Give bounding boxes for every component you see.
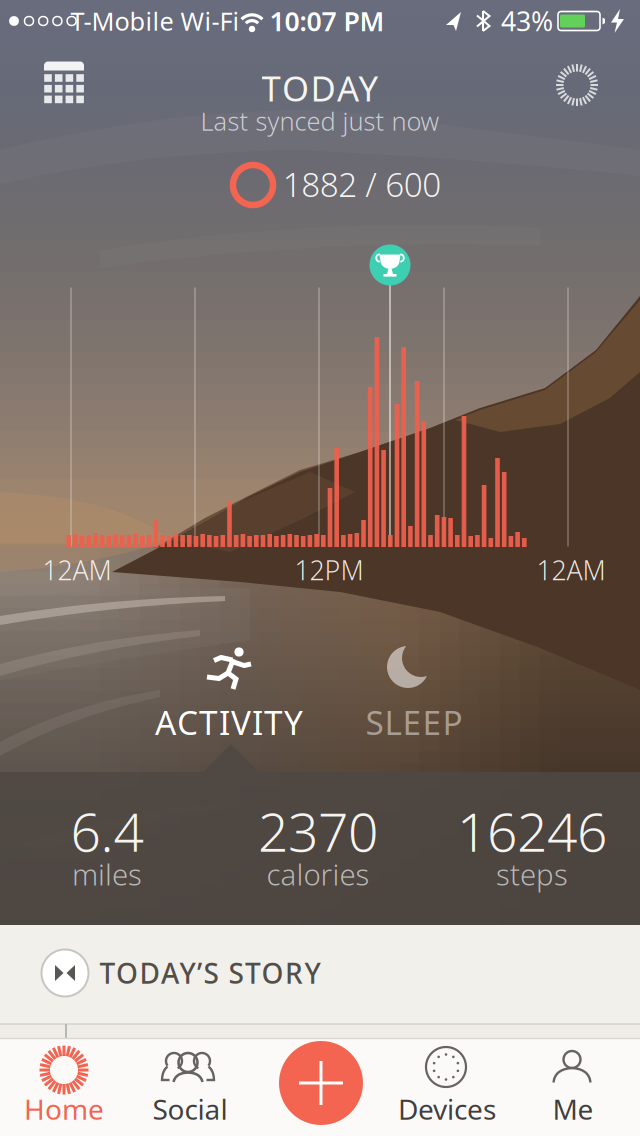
staticText: 6.4 [70,796,143,866]
staticText: 12AM [42,552,111,588]
staticText: TODAY [261,65,378,111]
staticText: SLEEP [365,700,462,744]
button[interactable]: Sync [553,61,601,109]
button[interactable]: Devices [384,1039,512,1135]
button[interactable]: Social [128,1039,256,1135]
staticText: 12PM [294,552,363,588]
staticText: Devices [398,1090,496,1128]
button[interactable]: SLEEP [336,630,486,750]
staticText: Home [24,1090,104,1128]
staticText: ACTIVITY [155,700,303,744]
staticText: 1882 / 600 [283,162,441,206]
button[interactable]: ACTIVITY [139,630,319,750]
staticText: 2370 [258,796,378,866]
button[interactable]: Me [512,1039,640,1135]
staticText: 10:07 PM [269,3,384,39]
staticText: 43% [501,3,553,39]
button[interactable]: Add [257,1037,385,1133]
staticText: Social [152,1090,227,1128]
button[interactable]: TODAY’S STORY [21,943,341,1003]
staticText: T-Mobile Wi-Fi [70,4,239,38]
staticText: 12AM [536,552,605,588]
staticText: 16246 [457,796,607,866]
staticText: Last synced just now [200,104,439,138]
staticText: miles [72,854,142,893]
staticText: Me [552,1090,593,1128]
staticText: steps [496,854,568,893]
button[interactable]: Calendar [36,54,92,110]
staticText: calories [266,854,369,893]
button[interactable]: Home [0,1039,128,1135]
staticText: TODAY’S STORY [99,954,320,992]
